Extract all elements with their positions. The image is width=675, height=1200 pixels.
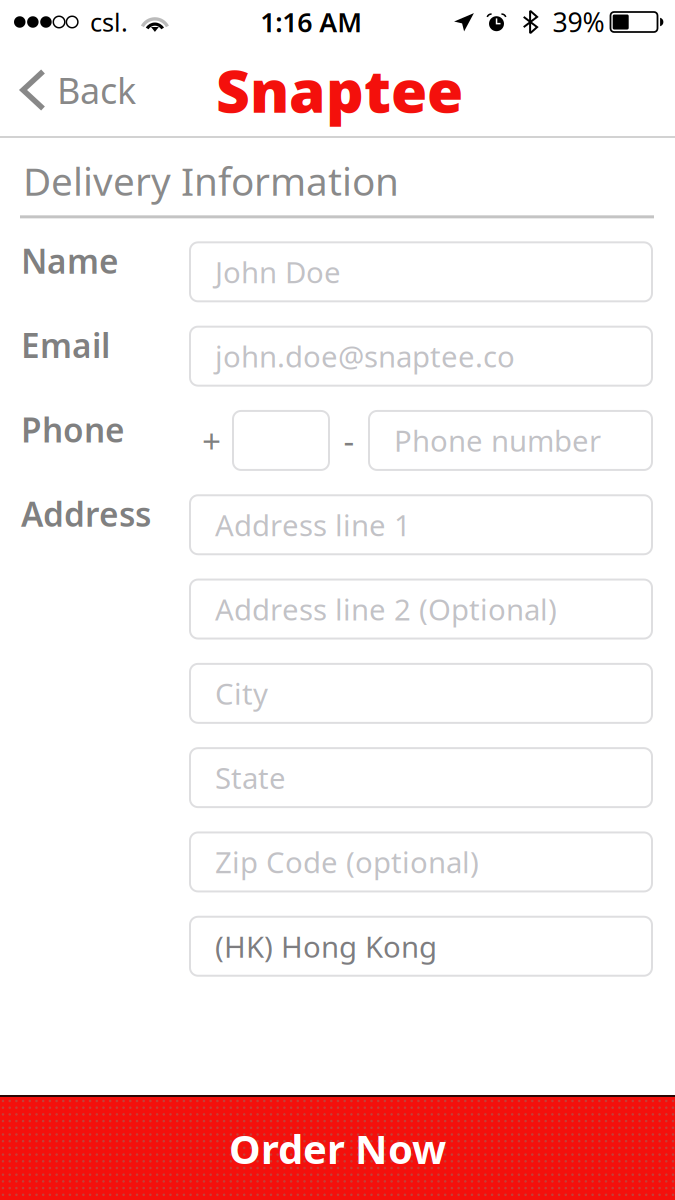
button[interactable]: Phone number	[369, 411, 652, 470]
staticText: State	[215, 758, 286, 797]
staticText: Email	[21, 323, 110, 367]
staticText: -	[343, 418, 354, 463]
staticText: 1:16 AM	[260, 4, 362, 40]
button[interactable]: Address line 2 (Optional)	[190, 579, 652, 638]
staticText: City	[215, 674, 268, 713]
staticText: Delivery Information	[23, 155, 399, 206]
staticText: csl.	[90, 5, 128, 39]
staticText: Back	[57, 66, 136, 114]
button[interactable]: Zip Code (optional)	[190, 832, 652, 891]
staticText: Phone	[21, 407, 125, 452]
button[interactable]: Address line 1	[190, 495, 652, 554]
staticText: Address	[21, 492, 151, 536]
staticText: Name	[21, 239, 119, 283]
button[interactable]	[233, 411, 329, 470]
staticText: Zip Code (optional)	[215, 842, 479, 881]
staticText: Address line 2 (Optional)	[215, 590, 557, 629]
button[interactable]: (HK) Hong Kong	[190, 917, 652, 976]
staticText: John Doe	[215, 252, 341, 291]
button[interactable]: Back	[0, 44, 154, 136]
staticText: john.doe@snaptee.co	[215, 337, 515, 376]
button[interactable]: State	[190, 748, 652, 807]
staticText: Snaptee	[216, 51, 463, 129]
staticText: (HK) Hong Kong	[215, 927, 437, 966]
staticText: +	[202, 418, 221, 463]
staticText: 39%	[552, 4, 604, 40]
button[interactable]: City	[190, 664, 652, 723]
staticText: Phone number	[394, 421, 601, 460]
button[interactable]: john.doe@snaptee.co	[190, 327, 652, 386]
staticText: Order Now	[229, 1122, 446, 1175]
button[interactable]: Order Now	[0, 1095, 675, 1200]
button[interactable]: John Doe	[190, 242, 652, 301]
staticText: Address line 1	[215, 505, 411, 544]
